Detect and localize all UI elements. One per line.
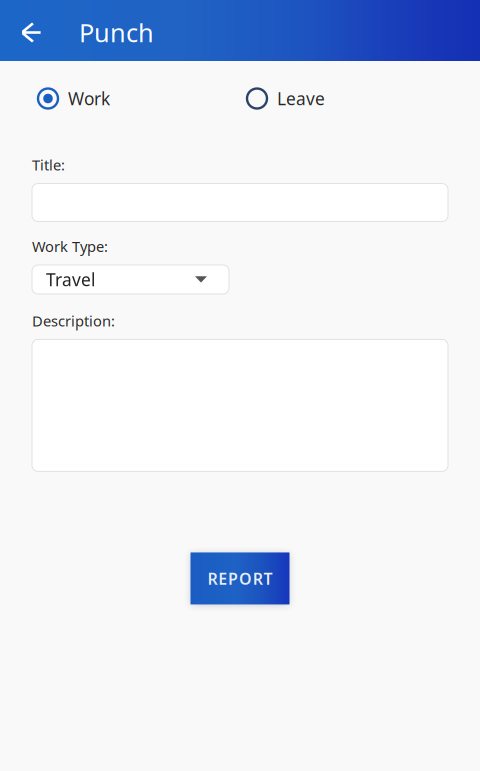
staticText: Description:	[32, 311, 115, 330]
staticText: Title:	[32, 155, 65, 174]
staticText: Travel	[46, 268, 95, 291]
staticText: Punch	[79, 16, 154, 49]
button[interactable]: REPORT	[190, 552, 289, 604]
staticText: Work Type:	[32, 236, 108, 256]
staticText: Work	[68, 87, 110, 110]
button[interactable]: Leave	[247, 87, 325, 110]
staticText: Leave	[277, 87, 325, 110]
staticText: REPORT	[207, 568, 272, 589]
button[interactable]: Travel	[32, 265, 229, 294]
button[interactable]: Work	[38, 87, 110, 110]
button[interactable]: Back	[10, 10, 54, 54]
